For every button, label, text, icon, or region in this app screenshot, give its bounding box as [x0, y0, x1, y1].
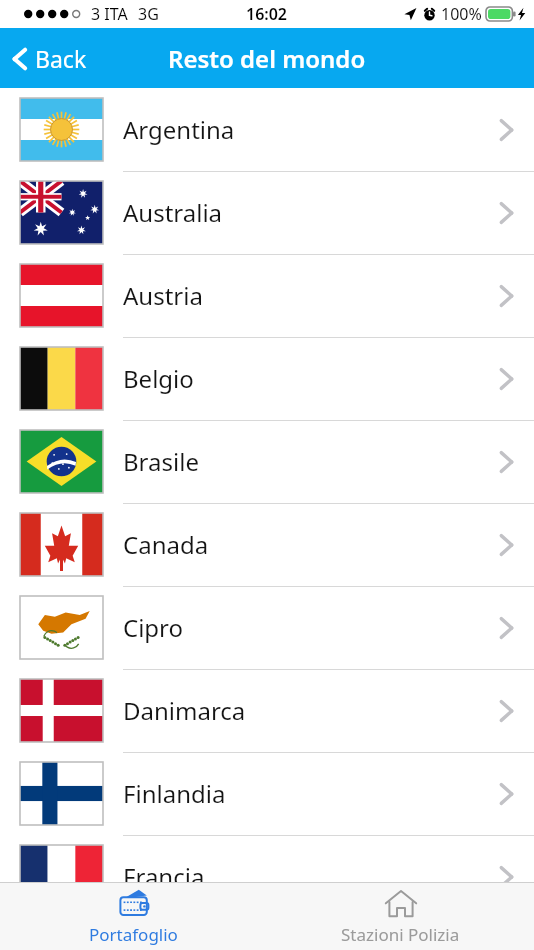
staticText: Cipro: [123, 611, 184, 644]
button[interactable]: Stazioni Polizia: [267, 883, 534, 950]
button[interactable]: Australia: [0, 171, 534, 254]
button[interactable]: Belgio: [0, 337, 534, 420]
staticText: Portafoglio: [89, 923, 178, 946]
button[interactable]: Danimarca: [0, 669, 534, 752]
staticText: Stazioni Polizia: [341, 923, 460, 946]
button[interactable]: Portafoglio: [0, 883, 267, 950]
button[interactable]: Cipro: [0, 586, 534, 669]
staticText: Back: [35, 43, 87, 74]
staticText: Canada: [123, 528, 209, 561]
button[interactable]: Finlandia: [0, 752, 534, 835]
staticText: Austria: [123, 279, 203, 312]
staticText: Francia: [123, 860, 205, 893]
staticText: Argentina: [123, 113, 235, 146]
button[interactable]: Francia: [0, 835, 534, 918]
button[interactable]: Brasile: [0, 420, 534, 503]
staticText: Finlandia: [123, 777, 226, 810]
staticText: Brasile: [123, 445, 199, 478]
staticText: 100%: [441, 3, 482, 25]
button[interactable]: Argentina: [0, 88, 534, 171]
staticText: Resto del mondo: [168, 42, 366, 75]
button[interactable]: Back: [0, 37, 101, 80]
button[interactable]: Canada: [0, 503, 534, 586]
staticText: Belgio: [123, 362, 194, 395]
button[interactable]: Austria: [0, 254, 534, 337]
staticText: 3G: [138, 3, 159, 25]
staticText: 3 ITA: [91, 3, 128, 25]
staticText: Danimarca: [123, 694, 246, 727]
staticText: 16:02: [246, 3, 288, 25]
staticText: Australia: [123, 196, 223, 229]
